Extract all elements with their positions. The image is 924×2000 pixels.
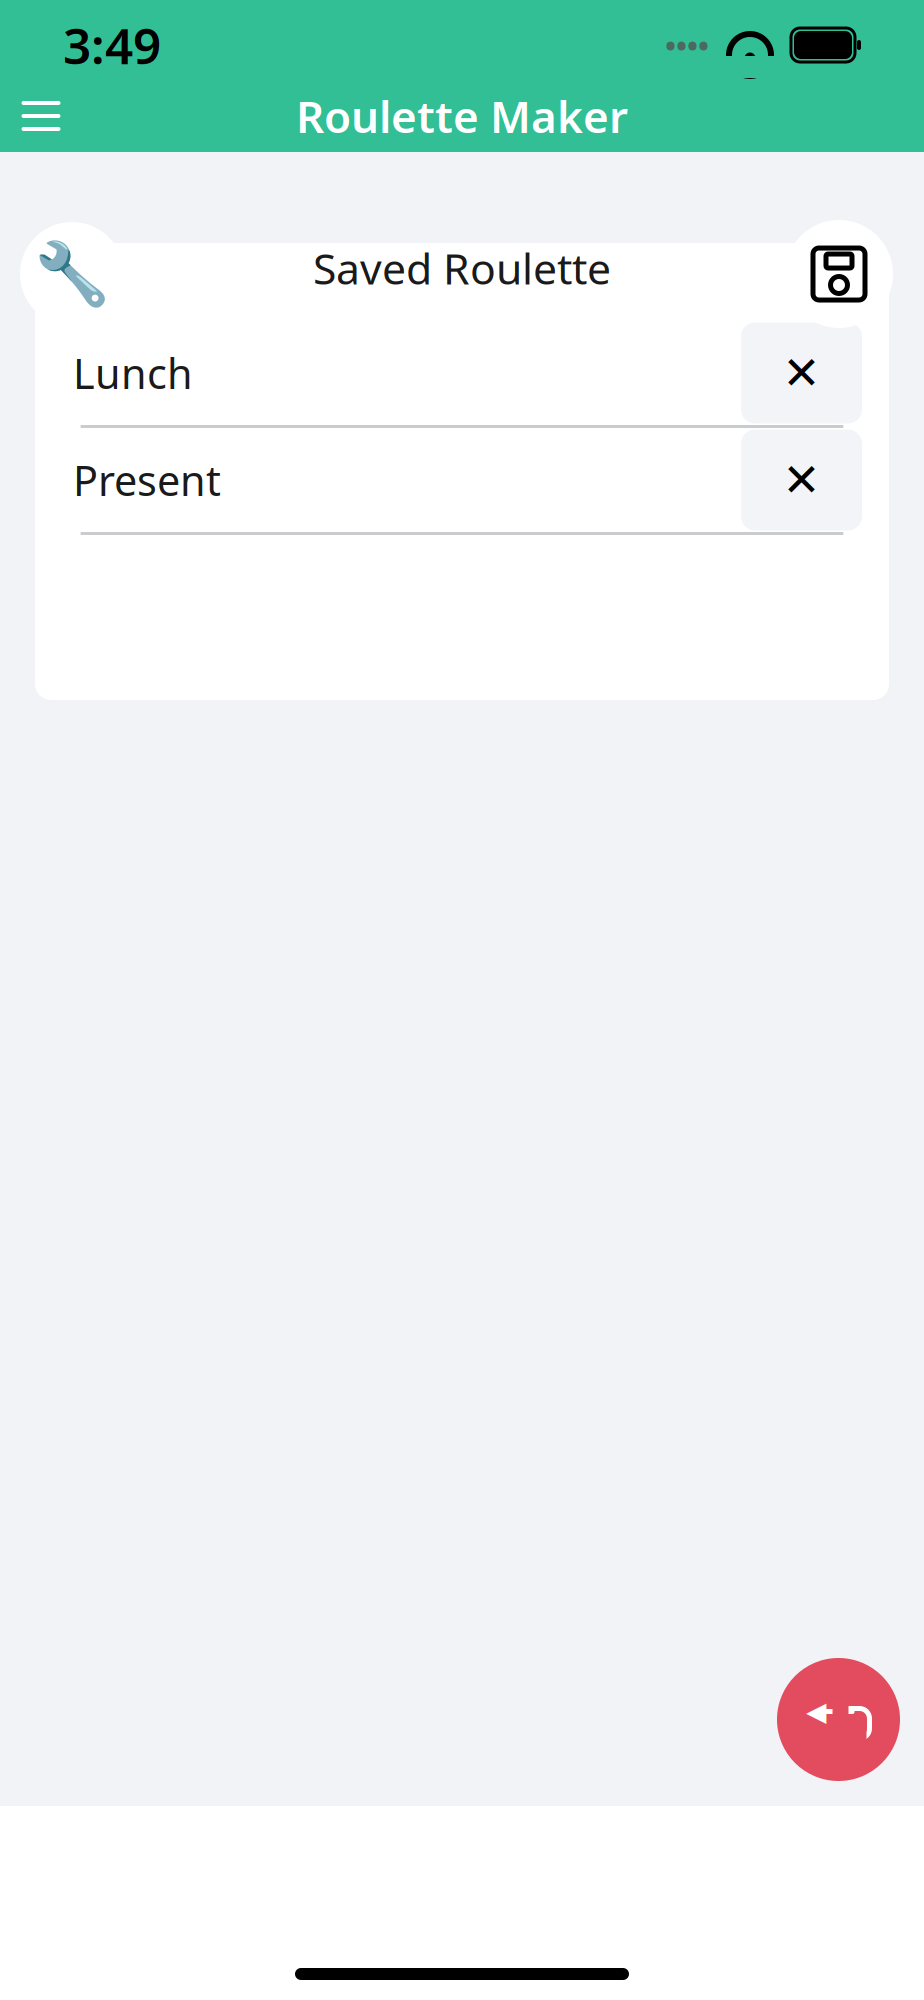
button[interactable]: Back [777, 1658, 900, 1781]
staticText: ◀ [806, 1696, 827, 1727]
button[interactable]: Save [785, 220, 893, 328]
staticText: 🔧 [34, 239, 110, 309]
staticText: Roulette Maker [296, 87, 628, 145]
staticText: Present [73, 453, 221, 507]
button[interactable]: Menu [0, 85, 82, 147]
staticText: ✕ [782, 454, 820, 506]
staticText: ✕ [782, 347, 820, 399]
button[interactable]: Settings [20, 222, 124, 326]
staticText: 3:49 [63, 12, 161, 78]
staticText: •••• [665, 25, 709, 64]
button[interactable]: Delete Lunch [741, 322, 862, 423]
staticText: Lunch [73, 346, 193, 400]
button[interactable]: Delete Present [741, 429, 862, 530]
staticText: Saved Roulette [313, 240, 611, 296]
